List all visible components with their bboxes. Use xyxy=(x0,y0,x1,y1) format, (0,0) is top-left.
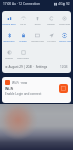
staticText: Direct App xyxy=(59,39,71,42)
button[interactable]: Clear grid xyxy=(58,13,71,30)
button[interactable]: Wi-Fi xyxy=(16,13,30,30)
button[interactable]: Direct App xyxy=(58,30,71,47)
button[interactable]: Data Suite xyxy=(16,47,30,64)
button[interactable]: CN GPS xyxy=(44,30,58,47)
staticText: Data Suite xyxy=(17,56,29,59)
button[interactable]: Rotate xyxy=(44,13,58,30)
staticText: ▮▮ 4G ▮ 92 xyxy=(54,2,70,6)
staticText: Mobile data xyxy=(2,22,16,25)
staticText: Torch xyxy=(34,22,41,25)
staticText: Wi-Fi xyxy=(20,22,26,25)
staticText: CN GPS xyxy=(47,39,56,42)
button[interactable]: Open screenshot xyxy=(59,84,68,93)
staticText: Theme xyxy=(5,56,13,59)
button[interactable]: Screen cast xyxy=(30,30,44,47)
staticText: Enable Login and connect xyxy=(5,92,42,96)
button[interactable]: Bluetooth xyxy=(2,30,16,47)
staticText: 17:00 Au · 12 Connection xyxy=(3,2,41,6)
staticText: Screen cast xyxy=(31,39,44,42)
button[interactable]: Wi-Fi · now xyxy=(2,77,71,103)
button[interactable]: Mobile data xyxy=(2,13,16,30)
button[interactable]: Theme xyxy=(2,47,16,64)
button[interactable]: Torch xyxy=(30,13,44,30)
staticText: 12GB xyxy=(60,65,68,69)
staticText: Wi-Fi · now xyxy=(12,81,28,85)
staticText: Wi-Fi xyxy=(5,86,14,91)
staticText: Screen xyxy=(19,39,27,42)
staticText: ⚙ August 29 | 2GB · Settings xyxy=(5,65,48,69)
button[interactable]: Screen xyxy=(16,30,30,47)
staticText: Bluetooth xyxy=(3,39,15,42)
staticText: Rotate xyxy=(47,22,55,25)
staticText: Clear grid xyxy=(59,22,70,25)
